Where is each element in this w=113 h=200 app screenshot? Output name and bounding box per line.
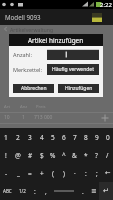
button[interactable]: ← bbox=[102, 164, 113, 182]
staticText: 1 bbox=[4, 133, 8, 142]
button[interactable]: = bbox=[24, 164, 36, 182]
staticText: Artikelverwaltung bbox=[10, 26, 54, 33]
button[interactable]: @ bbox=[12, 146, 24, 164]
button[interactable]: * bbox=[80, 146, 91, 164]
staticText: Abbrechen bbox=[21, 85, 47, 92]
button[interactable]: 0 bbox=[102, 128, 113, 146]
staticText: Preis bbox=[36, 104, 46, 110]
button[interactable]: Abbrechen bbox=[13, 84, 54, 93]
staticText: @ bbox=[15, 151, 21, 160]
button[interactable]: Eingabe bbox=[99, 182, 113, 200]
button[interactable] bbox=[47, 49, 99, 60]
staticText: , bbox=[45, 187, 47, 196]
button[interactable]: ; bbox=[91, 164, 102, 182]
button[interactable]: 5 bbox=[47, 128, 58, 146]
staticText: & bbox=[72, 151, 77, 160]
button[interactable]: 7 bbox=[69, 128, 80, 146]
staticText: $ bbox=[40, 151, 44, 160]
staticText: 8 bbox=[84, 133, 88, 142]
button[interactable]: ^ bbox=[58, 146, 69, 164]
staticText: / bbox=[106, 151, 109, 160]
staticText: 10 bbox=[4, 114, 10, 121]
staticText: Art bbox=[4, 104, 10, 110]
staticText: + bbox=[40, 169, 44, 178]
staticText: ABC bbox=[3, 188, 12, 194]
button[interactable]: · bbox=[69, 164, 80, 182]
staticText: Anz bbox=[20, 104, 28, 110]
button[interactable]: - bbox=[0, 164, 12, 182]
staticText: 6 bbox=[62, 133, 66, 142]
button[interactable]: 2 bbox=[12, 128, 24, 146]
button[interactable]: Häufig verwendet bbox=[47, 64, 99, 75]
staticText: ; bbox=[96, 169, 98, 178]
staticText: ^ bbox=[62, 151, 66, 160]
button[interactable]: + bbox=[36, 164, 47, 182]
staticText: _ bbox=[17, 169, 20, 178]
staticText: ? bbox=[95, 151, 98, 160]
button[interactable]: , bbox=[40, 182, 51, 200]
staticText: ! bbox=[5, 151, 7, 160]
button[interactable]: ) bbox=[58, 164, 69, 182]
staticText: # bbox=[28, 151, 33, 160]
staticText: 4 bbox=[40, 133, 44, 142]
staticText: Häufig verwendet bbox=[52, 66, 94, 73]
staticText: 2:22 bbox=[100, 1, 112, 9]
staticText: Modell 9093 bbox=[5, 13, 41, 21]
button[interactable]: : bbox=[80, 164, 91, 182]
staticText: 3 bbox=[28, 133, 32, 142]
staticText: ) bbox=[63, 169, 65, 178]
staticText: : bbox=[34, 187, 36, 196]
staticText: Artikel hinzufügen bbox=[28, 36, 84, 45]
staticText: 9 bbox=[95, 133, 99, 142]
button[interactable]: Hinzufügen bbox=[58, 84, 99, 93]
button[interactable]: ! bbox=[0, 146, 12, 164]
button[interactable]: Leertaste bbox=[51, 182, 77, 200]
button[interactable]: 1/2 bbox=[15, 182, 29, 200]
staticText: Hinzufügen bbox=[65, 85, 93, 92]
staticText: - bbox=[5, 169, 8, 178]
button[interactable]: ( bbox=[47, 164, 58, 182]
button[interactable]: 4 bbox=[36, 128, 47, 146]
staticText: : bbox=[85, 169, 87, 178]
button[interactable]: ABC bbox=[0, 182, 15, 200]
staticText: 7 bbox=[73, 133, 77, 142]
button[interactable]: 3 bbox=[24, 128, 36, 146]
staticText: 2 bbox=[16, 133, 20, 142]
staticText: 1 bbox=[22, 114, 25, 121]
staticText: Merkzettel: bbox=[13, 66, 47, 73]
button[interactable]: $ bbox=[36, 146, 47, 164]
staticText: 0 bbox=[106, 133, 110, 142]
staticText: ( bbox=[52, 169, 54, 178]
button[interactable]: : bbox=[29, 182, 40, 200]
staticText: 1/2 bbox=[19, 188, 26, 194]
staticText: . bbox=[82, 187, 84, 196]
staticText: ≡ bbox=[91, 187, 97, 195]
staticText: 713 000 bbox=[34, 114, 53, 121]
staticText: ← bbox=[105, 169, 111, 177]
button[interactable]: . bbox=[77, 182, 88, 200]
button[interactable]: 9 bbox=[91, 128, 102, 146]
button[interactable]: _ bbox=[12, 164, 24, 182]
staticText: = bbox=[28, 169, 32, 178]
staticText: ↵ bbox=[103, 187, 109, 195]
button[interactable]: / bbox=[102, 146, 113, 164]
staticText: * bbox=[84, 151, 88, 160]
staticText: Anzahl: bbox=[13, 51, 47, 58]
button[interactable]: % bbox=[47, 146, 58, 164]
button[interactable]: 6 bbox=[58, 128, 69, 146]
staticText: · bbox=[74, 169, 76, 178]
button[interactable]: Einstellungen bbox=[88, 182, 99, 200]
button[interactable]: 8 bbox=[80, 128, 91, 146]
staticText: 5 bbox=[51, 133, 55, 142]
button[interactable]: ? bbox=[91, 146, 102, 164]
button[interactable]: Merkzettel bbox=[92, 13, 102, 22]
button[interactable]: # bbox=[24, 146, 36, 164]
button[interactable]: & bbox=[69, 146, 80, 164]
staticText: % bbox=[50, 151, 56, 160]
button[interactable]: 1 bbox=[0, 128, 12, 146]
